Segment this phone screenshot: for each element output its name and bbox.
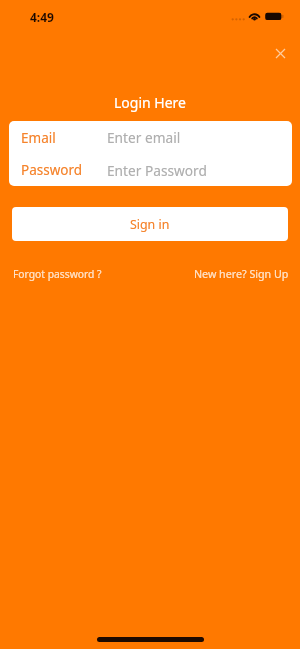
button[interactable]: Email <box>9 121 292 154</box>
staticText: Login Here <box>0 93 300 112</box>
button[interactable]: Password <box>9 154 292 186</box>
staticText: Email <box>21 129 107 147</box>
staticText: Enter Password <box>107 161 207 180</box>
button[interactable]: Sign in <box>12 207 288 241</box>
button[interactable]: Close <box>268 41 292 65</box>
staticText: 4:49 <box>30 9 54 25</box>
staticText: Sign in <box>130 216 170 233</box>
button[interactable]: Forgot password ? <box>13 267 102 281</box>
button[interactable]: New here? Sign Up <box>194 267 289 282</box>
staticText: Password <box>21 161 107 179</box>
staticText: Forgot password ? <box>13 267 102 281</box>
staticText: Enter email <box>107 128 181 147</box>
staticText: New here? Sign Up <box>194 267 289 282</box>
